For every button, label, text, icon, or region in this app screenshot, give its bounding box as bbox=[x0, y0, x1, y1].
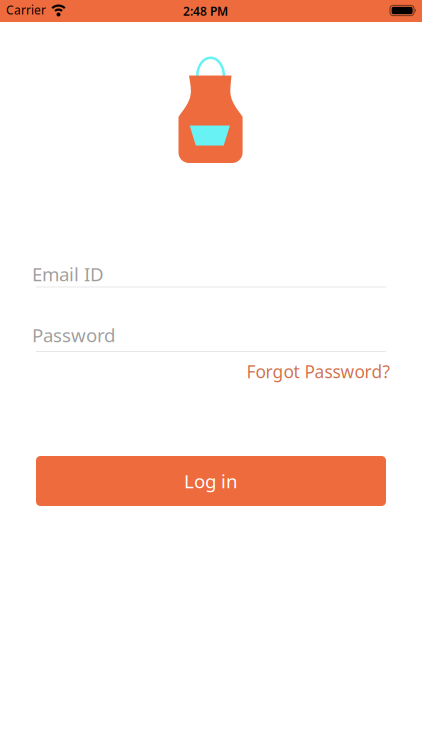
staticText: Log in bbox=[184, 469, 238, 493]
staticText: Carrier bbox=[6, 2, 46, 18]
staticText: Forgot Password? bbox=[246, 360, 390, 383]
staticText: 2:48 PM bbox=[183, 3, 228, 19]
button[interactable]: Forgot Password? bbox=[246, 360, 390, 383]
staticText: Email ID bbox=[32, 262, 104, 286]
staticText: Password bbox=[32, 323, 115, 347]
button[interactable]: Log in bbox=[36, 456, 386, 506]
